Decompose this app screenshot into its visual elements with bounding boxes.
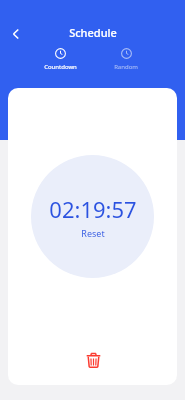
button[interactable]: Countdown	[34, 48, 86, 71]
button[interactable]: Back	[2, 20, 30, 48]
staticText: Schedule	[69, 25, 117, 40]
button[interactable]: Delete	[77, 344, 109, 376]
staticText: 02:19:57	[49, 194, 137, 224]
staticText: Countdown	[44, 63, 77, 71]
staticText: Reset	[81, 227, 105, 239]
button[interactable]: Random	[100, 48, 152, 71]
button[interactable]: 02:19:57	[31, 155, 154, 278]
staticText: Random	[114, 63, 138, 71]
